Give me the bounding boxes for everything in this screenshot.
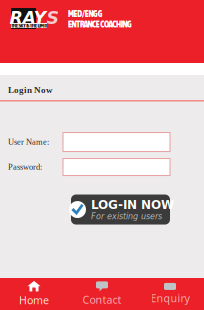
staticText: THE SKY IS THE LIMIT [11, 22, 47, 29]
staticText: Contact [82, 292, 121, 307]
staticText: Home [19, 293, 49, 307]
button[interactable]: Enquiry [136, 278, 204, 310]
button[interactable]: Home [0, 278, 68, 310]
staticText: RAY [9, 8, 46, 28]
staticText: Login Now [8, 85, 53, 95]
staticText: Password: [8, 162, 42, 172]
staticText: User Name: [8, 137, 49, 147]
staticText: LOG-IN NOW [91, 198, 174, 212]
staticText: MED/ENGG [68, 9, 103, 19]
staticText: S [46, 8, 58, 28]
button[interactable]: Contact [68, 278, 136, 310]
staticText: ENTRANCE COACHING [68, 19, 132, 29]
staticText: Enquiry [150, 291, 189, 305]
staticText: For existing users [91, 212, 162, 221]
button[interactable]: LOG-IN NOW [71, 194, 170, 224]
